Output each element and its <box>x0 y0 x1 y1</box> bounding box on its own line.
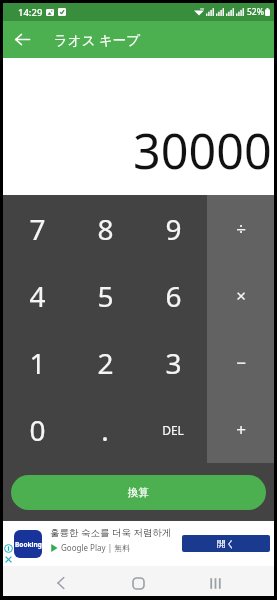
staticText: 開く <box>217 538 236 549</box>
staticText: ÷ <box>236 217 246 240</box>
staticText: 6 <box>165 277 182 315</box>
staticText: 5 <box>97 277 114 315</box>
button[interactable]: + <box>207 396 274 463</box>
staticText: . <box>101 411 109 449</box>
button[interactable]: 9 <box>139 195 207 262</box>
button[interactable]: × <box>207 262 274 329</box>
button[interactable]: 2 <box>71 329 139 396</box>
button[interactable]: . <box>71 396 139 463</box>
staticText: 2 <box>97 344 114 382</box>
staticText: Booking <box>15 540 42 549</box>
staticText: 14:29 <box>18 6 43 19</box>
button[interactable]: 3 <box>139 329 207 396</box>
staticText: Google Play | 無料 <box>61 542 131 553</box>
staticText: ラオス キープ <box>54 31 141 49</box>
button[interactable]: Back <box>3 21 41 58</box>
staticText: 0 <box>29 411 46 449</box>
button[interactable]: DEL <box>139 396 207 463</box>
staticText: 7 <box>29 210 46 248</box>
staticText: 30000 <box>133 117 272 183</box>
staticText: 3 <box>165 344 182 382</box>
button[interactable]: Close ad <box>3 554 13 564</box>
staticText: 4 <box>29 277 46 315</box>
button[interactable]: 4 <box>3 262 71 329</box>
button[interactable]: Ad info <box>3 543 13 553</box>
button[interactable]: − <box>207 329 274 396</box>
staticText: 훌륭한 숙소를 더욱 저렴하게 <box>50 526 172 539</box>
button[interactable]: 8 <box>71 195 139 262</box>
staticText: 換算 <box>128 486 149 499</box>
button[interactable]: 7 <box>3 195 71 262</box>
button[interactable]: 1 <box>3 329 71 396</box>
staticText: DEL <box>162 422 184 438</box>
button[interactable]: ÷ <box>207 195 274 262</box>
staticText: 8 <box>97 210 114 248</box>
staticText: 1 <box>29 344 46 382</box>
button[interactable]: Home <box>100 570 177 596</box>
button[interactable]: 5 <box>71 262 139 329</box>
button[interactable]: 換算 <box>11 475 266 510</box>
staticText: 9 <box>165 210 182 248</box>
staticText: 52% <box>247 6 264 18</box>
button[interactable]: Back <box>22 570 100 596</box>
staticText: − <box>236 351 246 374</box>
button[interactable]: 開く <box>182 535 270 552</box>
button[interactable]: 0 <box>3 396 71 463</box>
staticText: × <box>236 284 246 307</box>
button[interactable]: Recent apps <box>177 570 254 596</box>
staticText: + <box>236 418 246 441</box>
button[interactable]: 6 <box>139 262 207 329</box>
